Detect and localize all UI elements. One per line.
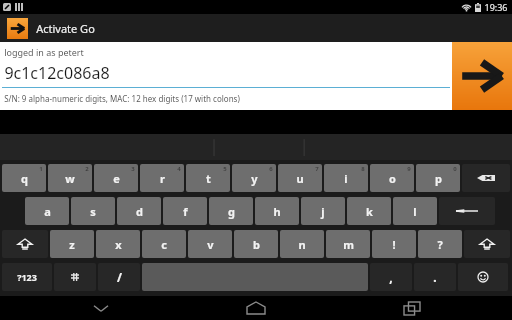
button[interactable]: Home — [201, 296, 311, 320]
button[interactable]: ? — [418, 230, 462, 258]
button[interactable]: c — [142, 230, 186, 258]
staticText: p — [435, 171, 442, 186]
staticText: ! — [392, 237, 396, 252]
button[interactable]: r — [140, 164, 184, 192]
button[interactable]: . — [414, 263, 456, 291]
button[interactable]: w — [48, 164, 92, 192]
button[interactable]: ?123 — [2, 263, 52, 291]
staticText: c — [161, 237, 167, 252]
button[interactable]: , — [370, 263, 412, 291]
button[interactable]: Activate Go — [0, 14, 512, 42]
staticText: ? — [437, 237, 443, 252]
button[interactable]: n — [280, 230, 324, 258]
staticText: 5 — [223, 165, 227, 173]
staticText: w — [65, 171, 75, 186]
staticText: / — [117, 269, 122, 285]
staticText: 19:36 — [484, 1, 508, 13]
staticText: 9c1c12c086a8 — [4, 62, 110, 84]
button[interactable]: Go — [452, 42, 512, 110]
button[interactable]: v — [188, 230, 232, 258]
button[interactable]: o — [370, 164, 414, 192]
staticText: Activate Go — [36, 21, 95, 36]
staticText: ?123 — [17, 271, 37, 283]
button[interactable]: Emoji — [458, 263, 508, 291]
staticText: t — [206, 171, 211, 186]
staticText: 4 — [177, 165, 181, 173]
button[interactable]: j — [301, 197, 345, 225]
button[interactable]: g — [209, 197, 253, 225]
button[interactable]: z — [50, 230, 94, 258]
button[interactable]: y — [232, 164, 276, 192]
staticText: . — [433, 269, 437, 285]
staticText: r — [160, 171, 165, 186]
staticText: j — [321, 204, 325, 219]
button[interactable]: Recent apps — [357, 296, 467, 320]
staticText: 2 — [85, 165, 89, 173]
button[interactable]: h — [255, 197, 299, 225]
button[interactable]: p — [416, 164, 460, 192]
button[interactable]: / — [98, 263, 140, 291]
button[interactable]: i — [324, 164, 368, 192]
staticText: 0 — [453, 165, 457, 173]
staticText: x — [115, 237, 122, 252]
button[interactable]: a — [25, 197, 69, 225]
staticText: 7 — [315, 165, 319, 173]
staticText: 3 — [131, 165, 135, 173]
button[interactable]: ! — [372, 230, 416, 258]
button[interactable]: Shift — [2, 230, 48, 258]
staticText: 1 — [39, 165, 43, 173]
staticText: v — [207, 237, 214, 252]
button[interactable]: u — [278, 164, 322, 192]
staticText: b — [253, 237, 260, 252]
staticText: s — [90, 204, 96, 219]
staticText: e — [113, 171, 120, 186]
staticText: 8 — [361, 165, 365, 173]
button[interactable]: d — [117, 197, 161, 225]
staticText: , — [389, 269, 393, 285]
staticText: i — [344, 171, 348, 186]
staticText: y — [251, 171, 258, 186]
button[interactable]: e — [94, 164, 138, 192]
button[interactable]: t — [186, 164, 230, 192]
staticText: f — [183, 204, 188, 219]
button[interactable]: Enter — [439, 197, 495, 225]
staticText: l — [413, 204, 417, 219]
button[interactable]: k — [347, 197, 391, 225]
staticText: g — [228, 204, 235, 219]
staticText: 9 — [407, 165, 411, 173]
button[interactable]: m — [326, 230, 370, 258]
staticText: d — [136, 204, 143, 219]
button[interactable]: s — [71, 197, 115, 225]
button[interactable]: l — [393, 197, 437, 225]
staticText: S/N: 9 alpha-numeric digits, MAC: 12 hex… — [4, 93, 240, 104]
staticText: k — [366, 204, 373, 219]
staticText: 6 — [269, 165, 273, 173]
button[interactable]: Backspace — [462, 164, 510, 192]
button[interactable]: x — [96, 230, 140, 258]
staticText: u — [296, 171, 304, 186]
staticText: a — [44, 204, 51, 219]
button[interactable]: f — [163, 197, 207, 225]
button[interactable]: Change language — [54, 263, 96, 291]
button[interactable]: b — [234, 230, 278, 258]
staticText: q — [21, 171, 28, 186]
button[interactable]: q — [2, 164, 46, 192]
staticText: m — [343, 237, 354, 252]
button[interactable]: Hide keyboard — [46, 296, 156, 320]
staticText: n — [298, 237, 306, 252]
staticText: z — [69, 237, 75, 252]
staticText: logged in as petert — [4, 46, 84, 58]
staticText: o — [389, 171, 396, 186]
button[interactable]: Shift — [464, 230, 510, 258]
staticText: h — [273, 204, 281, 219]
